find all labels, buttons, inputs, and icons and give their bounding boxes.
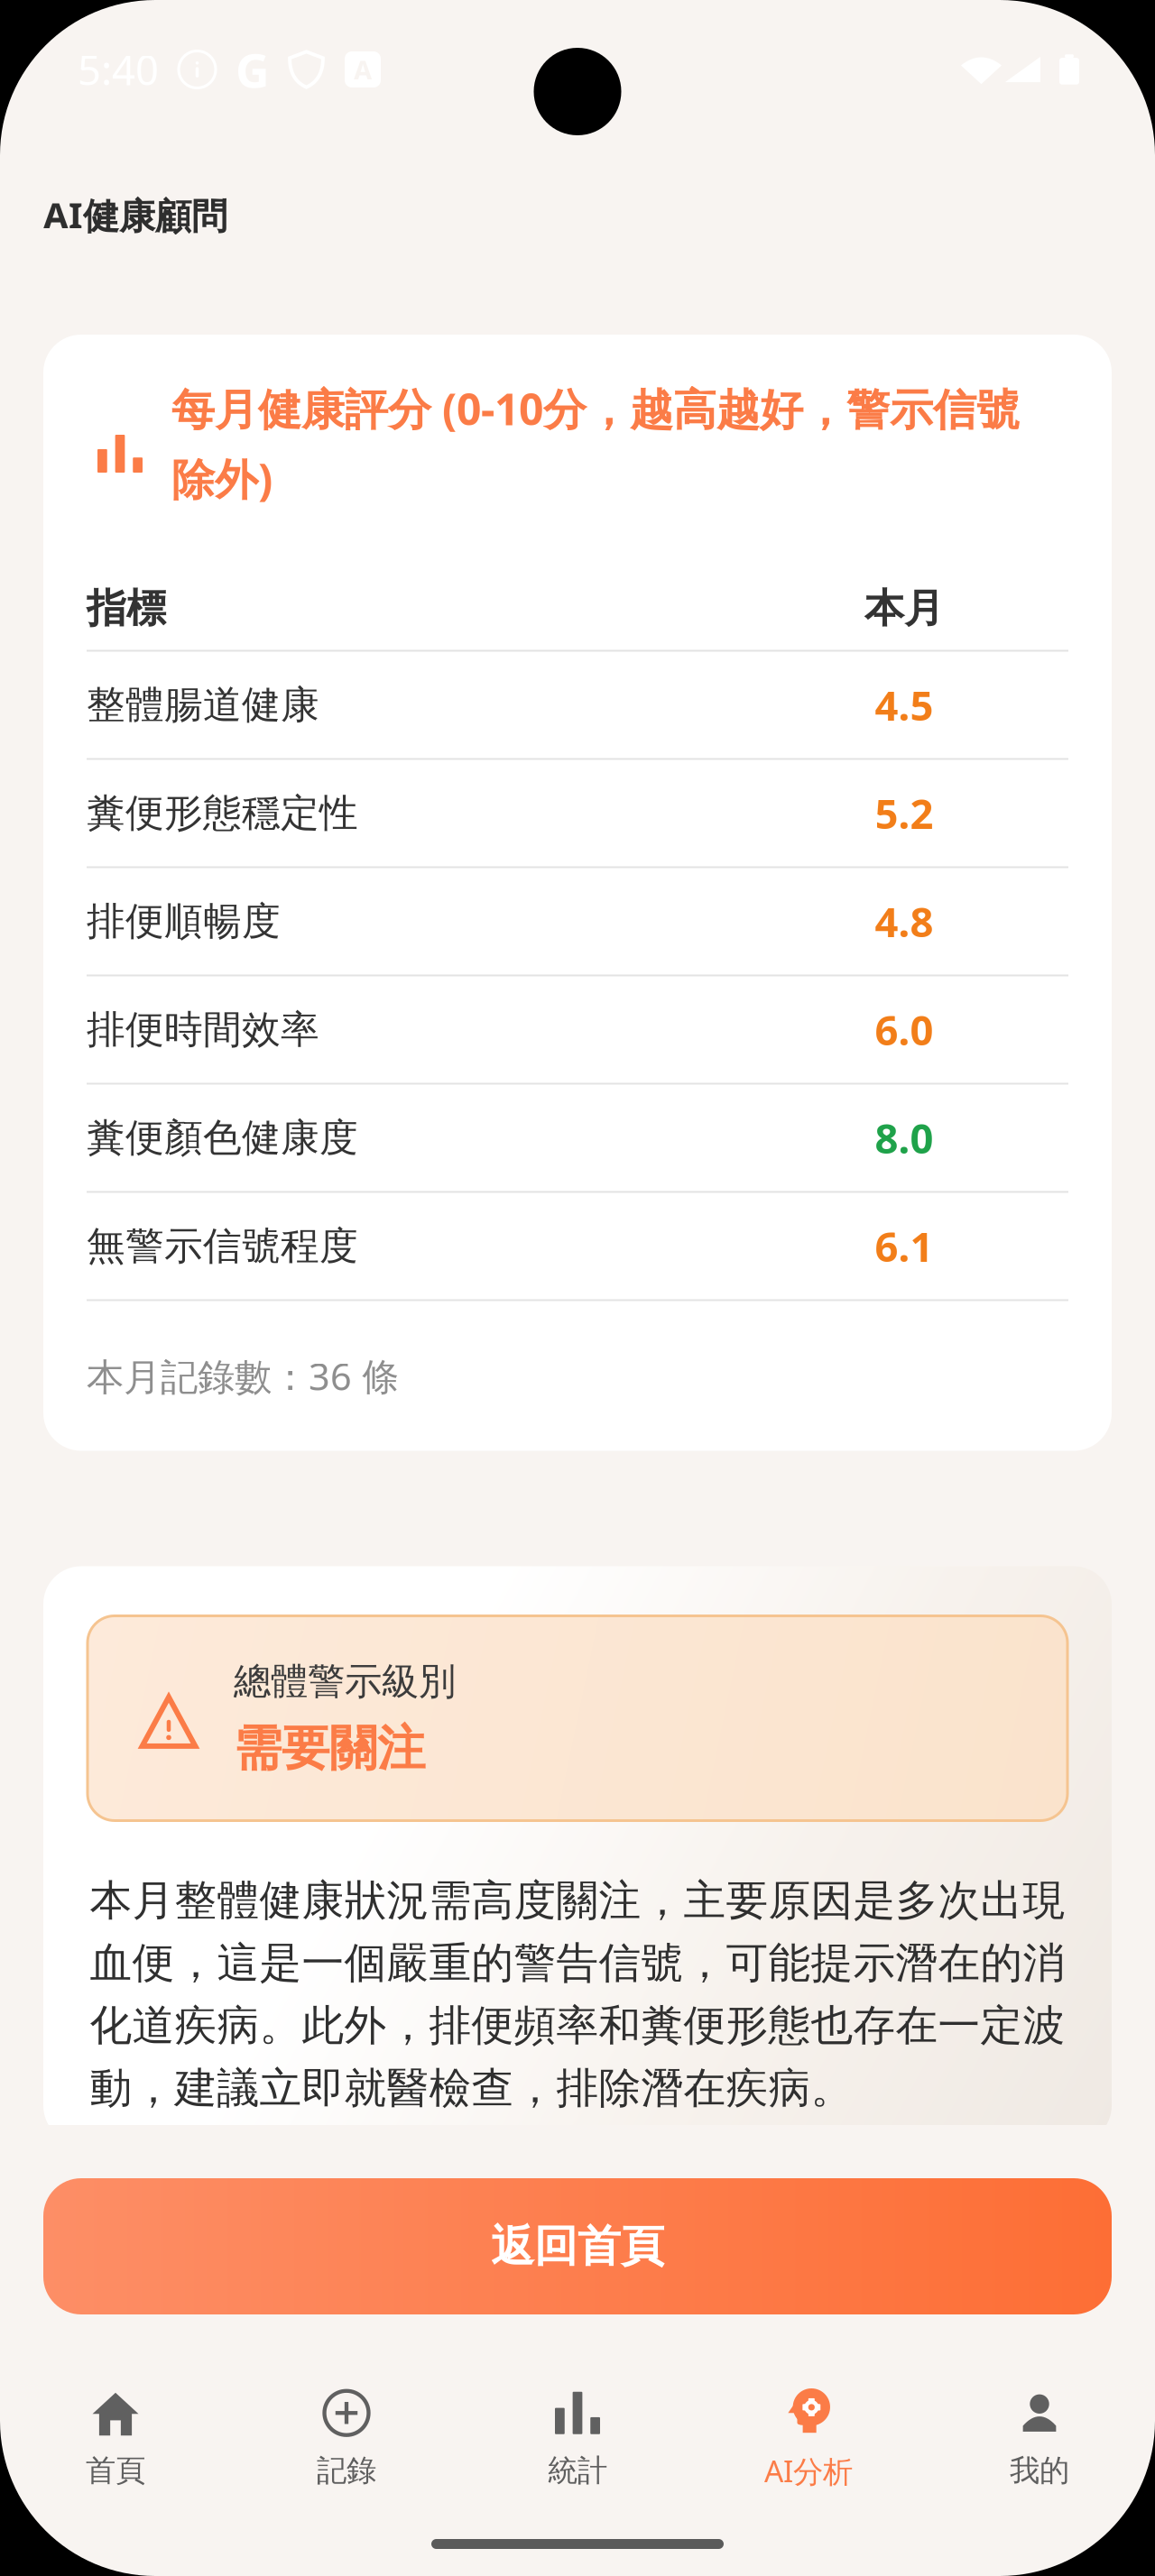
staticText: 8.0 (875, 1111, 933, 1165)
staticText: 本月整體健康狀況需高度關注，主要原因是多次出現血便，這是一個嚴重的警告信號，可能… (90, 1875, 1065, 2114)
staticText: 記錄 (317, 2452, 376, 2489)
staticText: 糞便形態穩定性 (87, 789, 358, 837)
staticText: 統計 (548, 2452, 607, 2489)
staticText: 排便順暢度 (87, 898, 281, 945)
staticText: 糞便顏色健康度 (87, 1114, 358, 1161)
staticText: 每月健康評分 (0-10分，越高越好，警示信號除外) (171, 380, 1020, 507)
staticText: AI分析 (764, 2451, 853, 2491)
staticText: 總體警示級別 (234, 1659, 456, 1704)
staticText: 5.2 (875, 786, 933, 840)
staticText: 5:40 (78, 42, 159, 97)
staticText: 6.0 (875, 1002, 933, 1057)
staticText: 需要關注 (234, 1719, 425, 1778)
staticText: 排便時間效率 (87, 1006, 319, 1053)
staticText: 4.8 (875, 894, 933, 949)
button[interactable]: 首頁 (0, 2390, 231, 2489)
button[interactable]: AI分析 (693, 2388, 924, 2491)
button[interactable]: 返回首頁 (43, 2178, 1112, 2314)
staticText: AI健康顧問 (43, 191, 227, 239)
staticText: 整體腸道健康 (87, 681, 319, 729)
button[interactable]: 我的 (924, 2390, 1155, 2489)
staticText: G (236, 38, 270, 101)
staticText: 本月 (864, 584, 944, 633)
staticText: 首頁 (86, 2452, 145, 2489)
staticText: 指標 (87, 584, 166, 633)
staticText: 本月記錄數：36 條 (87, 1351, 399, 1401)
staticText: 6.1 (875, 1219, 933, 1273)
staticText: 我的 (1010, 2452, 1069, 2489)
staticText: A (354, 52, 372, 87)
button[interactable]: 統計 (462, 2390, 693, 2489)
button[interactable]: 記錄 (231, 2390, 462, 2489)
staticText: 無警示信號程度 (87, 1222, 358, 1270)
staticText: 4.5 (875, 678, 933, 732)
staticText: 返回首頁 (491, 2220, 664, 2273)
